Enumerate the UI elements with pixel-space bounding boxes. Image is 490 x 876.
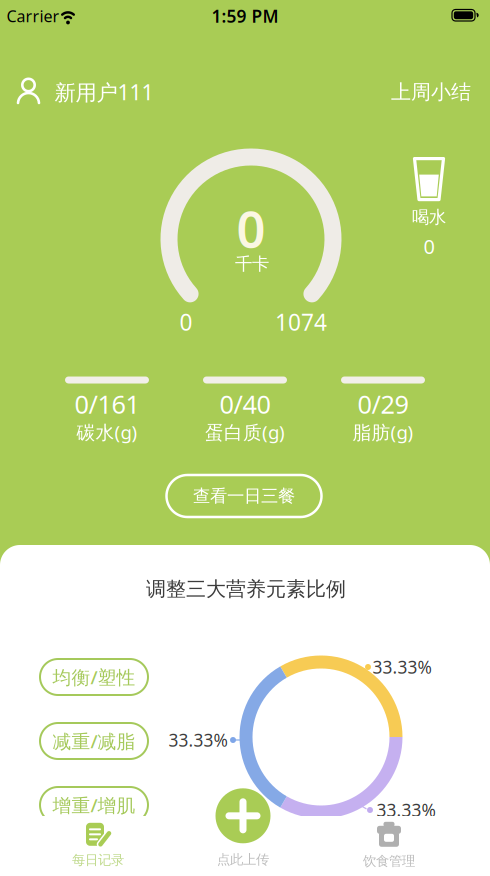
button[interactable]: 每日记录 [72, 822, 124, 868]
staticText: 33.33% [168, 728, 227, 751]
staticText: 33.33% [372, 655, 431, 678]
staticText: 每日记录 [72, 852, 124, 868]
staticText: 1074 [275, 307, 327, 337]
staticText: 查看一日三餐 [193, 485, 295, 507]
staticText: 0 [236, 194, 265, 262]
button[interactable]: 均衡/塑性 [40, 659, 148, 695]
staticText: 蛋白质(g) [205, 420, 285, 444]
staticText: 点此上传 [217, 851, 269, 868]
button[interactable]: 增重/增肌 [40, 787, 148, 823]
button[interactable]: 点此上传 [215, 788, 270, 868]
staticText: 0/40 [219, 387, 270, 421]
staticText: 33.33% [376, 798, 435, 821]
staticText: 0 [179, 307, 192, 337]
staticText: 减重/减脂 [52, 729, 135, 753]
staticText: Carrier [6, 5, 59, 27]
button[interactable]: 新用户111 [14, 77, 153, 107]
staticText: 增重/增肌 [52, 793, 135, 817]
button[interactable]: 查看一日三餐 [166, 475, 321, 517]
staticText: 碳水(g) [76, 420, 137, 444]
staticText: 上周小结 [391, 80, 471, 104]
staticText: 饮食管理 [363, 853, 415, 869]
staticText: 0/29 [357, 387, 408, 421]
button[interactable]: 饮食管理 [363, 821, 415, 869]
staticText: 0/161 [74, 387, 139, 421]
staticText: 调整三大营养元素比例 [146, 577, 346, 601]
staticText: 新用户111 [54, 78, 153, 106]
button[interactable]: 喝水 [412, 157, 446, 259]
button[interactable]: 上周小结 [391, 80, 471, 104]
staticText: 0 [423, 233, 434, 259]
staticText: 喝水 [412, 207, 446, 228]
staticText: 脂肪(g) [352, 420, 413, 444]
staticText: 均衡/塑性 [52, 665, 135, 689]
staticText: 千卡 [235, 253, 269, 275]
button[interactable]: 减重/减脂 [40, 723, 148, 759]
staticText: 1:59 PM [211, 4, 278, 27]
